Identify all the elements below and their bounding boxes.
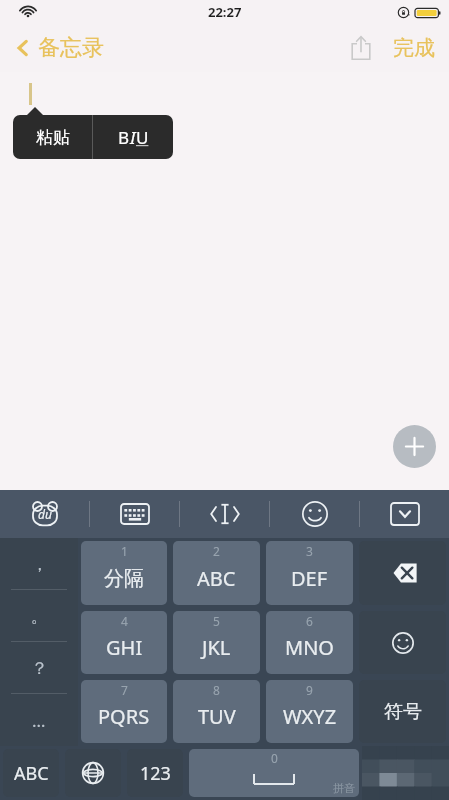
button[interactable]: Move cursor (180, 490, 269, 538)
staticText: B (118, 126, 130, 149)
button[interactable]: … (0, 694, 78, 746)
button[interactable]: ？ (0, 642, 78, 694)
button[interactable]: 粘贴 (13, 115, 92, 159)
staticText: U (136, 126, 149, 149)
staticText: 6 (306, 613, 313, 629)
staticText: 0 (271, 750, 278, 766)
staticText: 22:27 (208, 3, 242, 21)
button[interactable]: 。 (0, 590, 78, 642)
staticText: 备忘录 (38, 34, 104, 62)
button[interactable]: Key (359, 680, 446, 743)
button[interactable]: 4 (81, 611, 167, 674)
button[interactable]: Add (393, 425, 436, 468)
staticText: ABC (197, 565, 236, 592)
staticText: 粘贴 (36, 127, 70, 148)
staticText: DEF (291, 565, 328, 592)
button[interactable]: 7 (81, 680, 167, 743)
staticText: 7 (121, 682, 128, 698)
button[interactable]: Baidu input (0, 490, 89, 538)
staticText: ， (31, 554, 48, 575)
staticText: GHI (106, 634, 143, 661)
staticText: 4 (121, 613, 128, 629)
staticText: 完成 (393, 35, 435, 61)
staticText: 1 (121, 543, 128, 559)
staticText: 拼音 (333, 781, 355, 795)
staticText: 9 (306, 682, 313, 698)
staticText: PQRS (98, 703, 150, 730)
staticText: ABC (14, 761, 49, 786)
button[interactable]: 完成 (389, 31, 439, 65)
staticText: 3 (306, 543, 313, 559)
button[interactable]: Share (345, 30, 377, 66)
staticText: MNO (285, 634, 334, 661)
button[interactable]: Key (359, 611, 446, 674)
button[interactable]: ， (0, 538, 78, 590)
staticText: du (38, 506, 52, 522)
staticText: WXYZ (283, 703, 337, 730)
button[interactable]: Emoji (270, 490, 359, 538)
staticText: 。 (31, 606, 48, 627)
button[interactable]: Switch language (65, 749, 121, 797)
staticText: JKL (202, 634, 231, 661)
button[interactable]: 2 (173, 541, 260, 605)
staticText: 2 (213, 543, 220, 559)
staticText: 符号 (384, 700, 422, 724)
button[interactable]: 3 (266, 541, 353, 605)
staticText: 123 (140, 761, 171, 786)
staticText: I (130, 126, 136, 149)
staticText: 8 (213, 682, 220, 698)
button[interactable]: 备忘录 (8, 30, 110, 66)
button[interactable]: 9 (266, 680, 353, 743)
button[interactable]: 1 (81, 541, 167, 605)
button[interactable]: Keyboard layout (90, 490, 179, 538)
button[interactable]: 6 (266, 611, 353, 674)
button[interactable]: 123 (127, 749, 183, 797)
staticText: TUV (198, 703, 236, 730)
staticText: … (32, 709, 46, 732)
staticText: 分隔 (104, 566, 144, 591)
staticText: 5 (213, 613, 220, 629)
staticText: ？ (31, 658, 48, 679)
button[interactable]: 8 (173, 680, 260, 743)
button[interactable]: Hide keyboard (360, 490, 449, 538)
button[interactable]: Key (359, 541, 446, 605)
button[interactable]: 5 (173, 611, 260, 674)
button[interactable]: Space (189, 749, 359, 797)
button[interactable]: ABC (3, 749, 59, 797)
button[interactable]: B (93, 115, 173, 159)
